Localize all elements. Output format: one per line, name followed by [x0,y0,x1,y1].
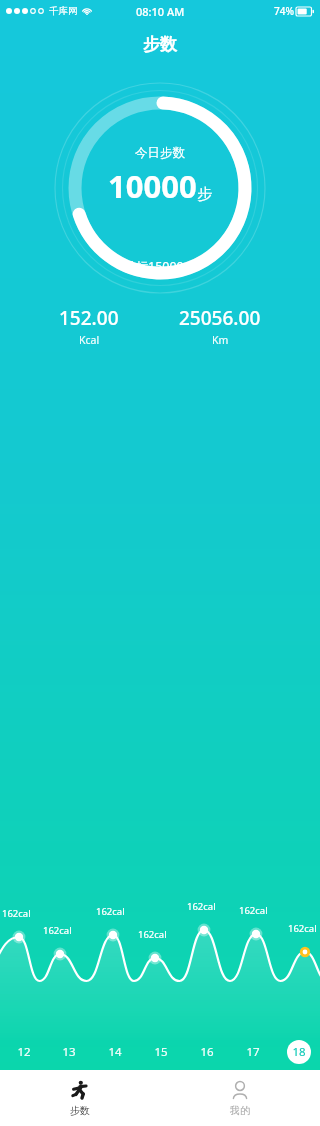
staticText: 74% [274,4,294,18]
staticText: 25056.00 [179,305,261,331]
staticText: 步数 [143,34,177,55]
staticText: 162cal [187,900,216,913]
staticText: 162cal [138,928,167,941]
staticText: 千库网 [49,5,78,17]
button[interactable]: 我的 [160,1070,320,1126]
staticText: 162cal [2,907,31,920]
button[interactable]: 25056.00 [179,305,261,347]
button[interactable]: 12 [12,1040,36,1064]
staticText: 步数 [70,1104,90,1117]
staticText: 162cal [239,904,268,917]
staticText: 12 [17,1044,31,1060]
staticText: 162cal [288,922,317,935]
staticText: 162cal [43,924,72,937]
staticText: 我的 [230,1104,250,1117]
button[interactable]: 16 [195,1040,219,1064]
staticText: 今日步数 [135,145,185,161]
staticText: 162cal [96,905,125,918]
staticText: 步 [197,185,212,204]
staticText: Kcal [79,333,100,347]
staticText: 152.00 [59,305,119,331]
staticText: 16 [200,1044,214,1060]
button[interactable]: 步数 [0,1070,160,1126]
button[interactable]: 目标15000 [115,255,205,278]
staticText: 目标15000 [123,258,184,275]
staticText: Km [212,333,229,347]
button[interactable]: 13 [57,1040,81,1064]
button[interactable]: 15 [149,1040,173,1064]
staticText: 14 [108,1044,122,1060]
button[interactable]: 14 [103,1040,127,1064]
button[interactable]: 17 [241,1040,265,1064]
staticText: 17 [246,1044,260,1060]
staticText: 13 [62,1044,76,1060]
staticText: 08:10 AM [136,4,185,19]
staticText: 18 [292,1044,306,1060]
button[interactable]: 18 [287,1040,311,1064]
staticText: 10000 [108,165,197,207]
staticText: 15 [154,1044,168,1060]
button[interactable]: 152.00 [59,305,119,347]
